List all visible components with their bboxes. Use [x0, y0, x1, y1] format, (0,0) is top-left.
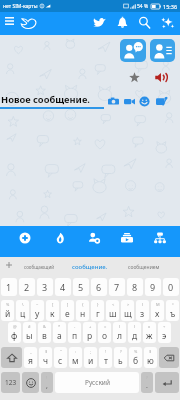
button[interactable]: &	[38, 322, 51, 343]
button[interactable]: Camera	[105, 93, 121, 109]
button[interactable]: 7	[109, 278, 125, 296]
button[interactable]: сообщение.	[66, 257, 114, 277]
button[interactable]: 2	[19, 278, 35, 296]
button[interactable]: 1	[1, 278, 17, 296]
button[interactable]: Menu	[1, 12, 18, 29]
staticText: {	[82, 302, 84, 307]
button[interactable]: 3	[37, 278, 53, 296]
button[interactable]: (	[136, 300, 149, 321]
staticText: ]	[67, 302, 69, 307]
button[interactable]: M	[151, 300, 164, 321]
button[interactable]: 9	[145, 278, 161, 296]
staticText: ц	[20, 308, 26, 320]
button[interactable]: Notifications	[112, 12, 132, 32]
button[interactable]: $	[39, 347, 52, 368]
button[interactable]: #	[23, 322, 36, 343]
button[interactable]: Videos	[115, 226, 139, 250]
button[interactable]: _	[24, 347, 37, 368]
staticText: 54 %	[137, 3, 149, 10]
button[interactable]: Video	[121, 93, 137, 109]
button[interactable]: \	[16, 300, 29, 321]
button[interactable]: Sticker	[153, 93, 169, 109]
button[interactable]: [	[46, 300, 59, 321]
staticText: =	[104, 324, 107, 329]
button[interactable]: 4	[55, 278, 71, 296]
staticText: е	[65, 308, 70, 320]
staticText: -	[74, 324, 76, 329]
button[interactable]: ÷	[158, 322, 171, 343]
button[interactable]: 123	[1, 372, 20, 393]
button[interactable]: 8	[127, 278, 143, 296]
button[interactable]: :	[69, 347, 82, 368]
staticText: Русский	[85, 378, 110, 387]
staticText: х	[155, 308, 160, 320]
button[interactable]: Logo	[19, 12, 39, 32]
button[interactable]: 6	[91, 278, 107, 296]
button[interactable]: сообщением	[120, 257, 168, 277]
button[interactable]: (	[113, 322, 126, 343]
staticText: ~	[36, 302, 39, 307]
button[interactable]: °	[166, 300, 179, 321]
staticText: я	[28, 355, 33, 367]
button[interactable]: "	[54, 347, 67, 368]
button[interactable]: Sound	[154, 70, 169, 85]
button[interactable]: сообщающий	[18, 257, 60, 277]
button[interactable]: -	[68, 322, 81, 343]
button[interactable]: %	[1, 300, 14, 321]
button[interactable]: ?	[114, 347, 127, 368]
button[interactable]: Enter	[155, 372, 179, 393]
button[interactable]: Add friend	[82, 226, 106, 250]
button[interactable]: Favorite	[127, 70, 142, 85]
button[interactable]: 0	[163, 278, 179, 296]
button[interactable]: Chat contact	[120, 39, 146, 62]
button[interactable]: }	[91, 300, 104, 321]
staticText: "	[60, 349, 62, 354]
staticText: о	[102, 330, 108, 342]
button[interactable]: $	[144, 347, 157, 368]
button[interactable]: Emoji	[136, 93, 152, 109]
button[interactable]: @	[8, 322, 21, 343]
button[interactable]: x	[143, 322, 156, 343]
button[interactable]: !	[99, 347, 112, 368]
button[interactable]: More suggestions	[1, 257, 17, 273]
button[interactable]: >	[121, 300, 134, 321]
button[interactable]: Groups	[148, 226, 172, 250]
staticText: г	[96, 308, 100, 320]
button[interactable]: Bird	[89, 12, 109, 32]
button[interactable]: Trending	[48, 226, 72, 250]
button[interactable]: =	[98, 322, 111, 343]
button[interactable]: Contact info	[150, 39, 175, 62]
button[interactable]: 5	[73, 278, 89, 296]
staticText: 2	[24, 281, 30, 293]
button[interactable]: {	[76, 300, 89, 321]
button[interactable]: !	[41, 372, 53, 393]
staticText: щ	[124, 308, 132, 320]
button[interactable]: Русский	[55, 372, 139, 393]
staticText: ?	[120, 349, 122, 354]
staticText: ы	[26, 330, 33, 342]
button[interactable]: +	[83, 322, 96, 343]
button[interactable]: Emoji	[22, 372, 39, 393]
button[interactable]: ]	[61, 300, 74, 321]
staticText: !	[105, 349, 107, 354]
button[interactable]: Effects	[157, 12, 177, 32]
button[interactable]: Search	[134, 12, 154, 32]
button[interactable]: Shift	[1, 347, 22, 368]
button[interactable]: ;	[84, 347, 97, 368]
button[interactable]: )	[128, 322, 141, 343]
button[interactable]: <	[106, 300, 119, 321]
button[interactable]: ~	[31, 300, 44, 321]
staticText: 15:36	[163, 3, 178, 10]
staticText: %	[134, 349, 138, 354]
button[interactable]: Add	[13, 226, 37, 250]
staticText: (	[142, 302, 144, 307]
button[interactable]: ?	[141, 372, 153, 393]
staticText: ш	[109, 308, 117, 320]
button[interactable]: Backspace	[159, 347, 179, 368]
button[interactable]: *	[53, 322, 66, 343]
staticText: ж	[146, 330, 153, 342]
staticText: сообщающий	[24, 264, 54, 270]
staticText: ч	[43, 355, 49, 367]
button[interactable]: %	[129, 347, 142, 368]
staticText: M	[156, 302, 160, 307]
